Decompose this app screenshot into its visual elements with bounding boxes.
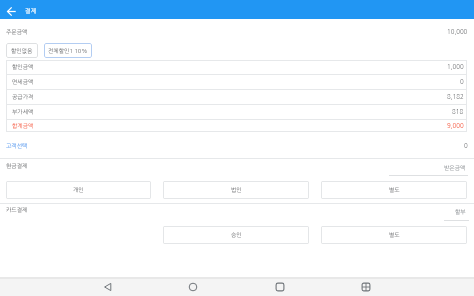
staticText: 별도 — [389, 232, 400, 238]
staticText: 8,182 — [447, 94, 464, 100]
staticText: 받은금액 — [444, 165, 466, 171]
button[interactable]: Recent apps — [272, 277, 288, 296]
button[interactable]: 할인없음 — [6, 43, 38, 58]
staticText: 0 — [460, 79, 464, 85]
button[interactable]: 승인 — [163, 226, 309, 244]
staticText: 0 — [464, 143, 468, 149]
staticText: 개인 — [73, 187, 84, 193]
staticText: 면세금액 — [12, 79, 34, 85]
button[interactable]: 개인 — [6, 181, 151, 199]
staticText: 현금결제 — [6, 163, 28, 169]
button[interactable]: Home — [185, 277, 201, 296]
button[interactable]: 전체할인1 10% — [44, 43, 92, 58]
staticText: 카드결제 — [6, 207, 28, 213]
button[interactable]: 고객선택 — [6, 143, 28, 149]
staticText: 법인 — [231, 187, 242, 193]
staticText: 할인없음 — [11, 48, 33, 54]
button[interactable]: Split screen — [358, 277, 374, 296]
staticText: 9,000 — [447, 123, 464, 129]
staticText: 1,000 — [447, 64, 464, 70]
button[interactable]: Back — [3, 2, 19, 18]
staticText: 결제 — [25, 8, 37, 14]
staticText: 818 — [452, 109, 464, 115]
button[interactable]: 별도 — [321, 226, 467, 244]
staticText: 할인금액 — [12, 64, 34, 70]
staticText: 합계금액 — [12, 123, 34, 129]
button[interactable]: 별도 — [321, 181, 467, 199]
button[interactable]: Back — [100, 277, 116, 296]
staticText: 전체할인1 10% — [48, 48, 88, 54]
staticText: 승인 — [231, 232, 242, 238]
staticText: 부가세액 — [12, 109, 34, 115]
staticText: 주문금액 — [6, 29, 28, 35]
staticText: 할부 — [455, 209, 466, 215]
staticText: 10,000 — [447, 29, 468, 35]
staticText: 별도 — [389, 187, 400, 193]
button[interactable]: 법인 — [163, 181, 309, 199]
staticText: 공급가격 — [12, 94, 34, 100]
